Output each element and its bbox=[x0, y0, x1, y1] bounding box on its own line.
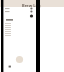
staticText: Brew Log bbox=[22, 3, 41, 8]
button[interactable]: Brew Log bbox=[0, 0, 64, 7]
